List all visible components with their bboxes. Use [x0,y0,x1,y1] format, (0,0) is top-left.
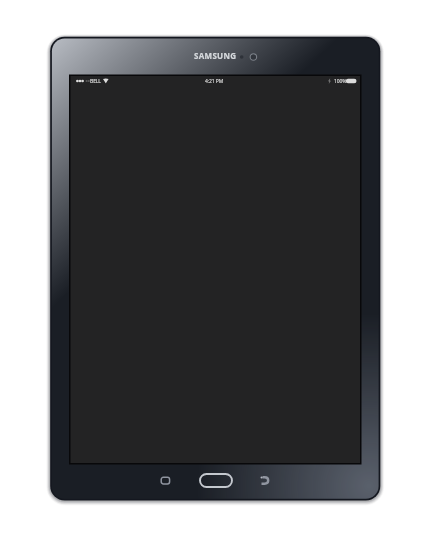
staticText: SAMSUNG [194,50,237,61]
staticText: BELL [90,78,101,85]
staticText: 4:21 PM [205,78,223,85]
staticText: 100% [334,78,346,85]
